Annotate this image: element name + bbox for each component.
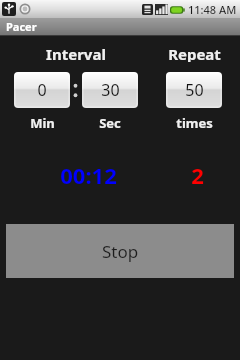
staticText: Sec — [99, 114, 121, 130]
staticText: 2 — [191, 160, 204, 186]
other: USB connected — [2, 2, 16, 16]
staticText: 50 — [185, 79, 204, 101]
staticText: Interval — [46, 44, 106, 62]
button[interactable]: 30 — [82, 72, 138, 108]
staticText: 11:48 AM — [188, 2, 237, 17]
other: Sync — [19, 3, 31, 15]
other: Battery — [170, 5, 185, 15]
staticText: Repeat — [168, 44, 221, 62]
button[interactable]: Stop — [6, 224, 234, 278]
staticText: Pacer — [6, 19, 37, 34]
staticText: 30 — [101, 79, 120, 101]
other: SD card — [142, 4, 153, 15]
button[interactable]: 0 — [14, 72, 70, 108]
staticText: 0 — [37, 79, 47, 101]
staticText: times — [176, 114, 213, 130]
staticText: 00:12 — [60, 160, 117, 186]
other: Signal strength — [155, 4, 168, 15]
staticText: Stop — [102, 240, 139, 263]
staticText: Min — [30, 114, 55, 130]
button[interactable]: 50 — [166, 72, 222, 108]
